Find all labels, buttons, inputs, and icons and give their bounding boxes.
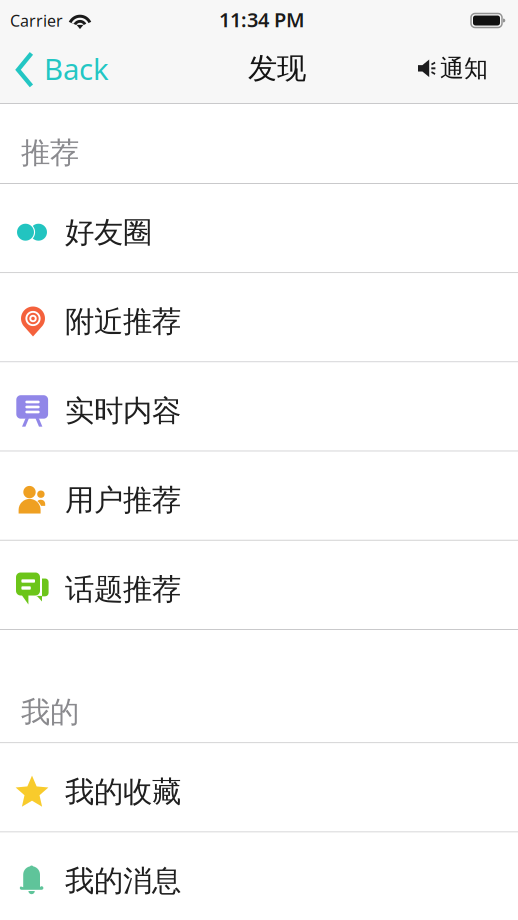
staticText: Carrier [10, 10, 63, 31]
staticText: 11:34 PM [219, 6, 305, 33]
button[interactable]: 我的收藏 [0, 743, 518, 832]
staticText: 我的收藏 [65, 774, 181, 810]
button[interactable]: 通知 [406, 41, 518, 104]
staticText: 推荐 [21, 135, 79, 171]
staticText: 用户推荐 [65, 482, 181, 518]
button[interactable]: Back [0, 41, 121, 104]
staticText: 实时内容 [65, 393, 181, 429]
staticText: 话题推荐 [65, 571, 181, 607]
staticText: 发现 [248, 50, 306, 86]
staticText: 我的消息 [65, 863, 181, 899]
button[interactable]: 用户推荐 [0, 452, 518, 541]
staticText: Back [44, 49, 109, 88]
button[interactable]: 话题推荐 [0, 541, 518, 630]
staticText: 我的 [21, 694, 79, 730]
button[interactable]: 附近推荐 [0, 273, 518, 362]
button[interactable]: 实时内容 [0, 362, 518, 452]
staticText: 通知 [440, 54, 488, 83]
staticText: 附近推荐 [65, 304, 181, 340]
button[interactable]: 好友圈 [0, 184, 518, 273]
staticText: 好友圈 [65, 215, 152, 251]
button[interactable]: 我的消息 [0, 832, 518, 920]
